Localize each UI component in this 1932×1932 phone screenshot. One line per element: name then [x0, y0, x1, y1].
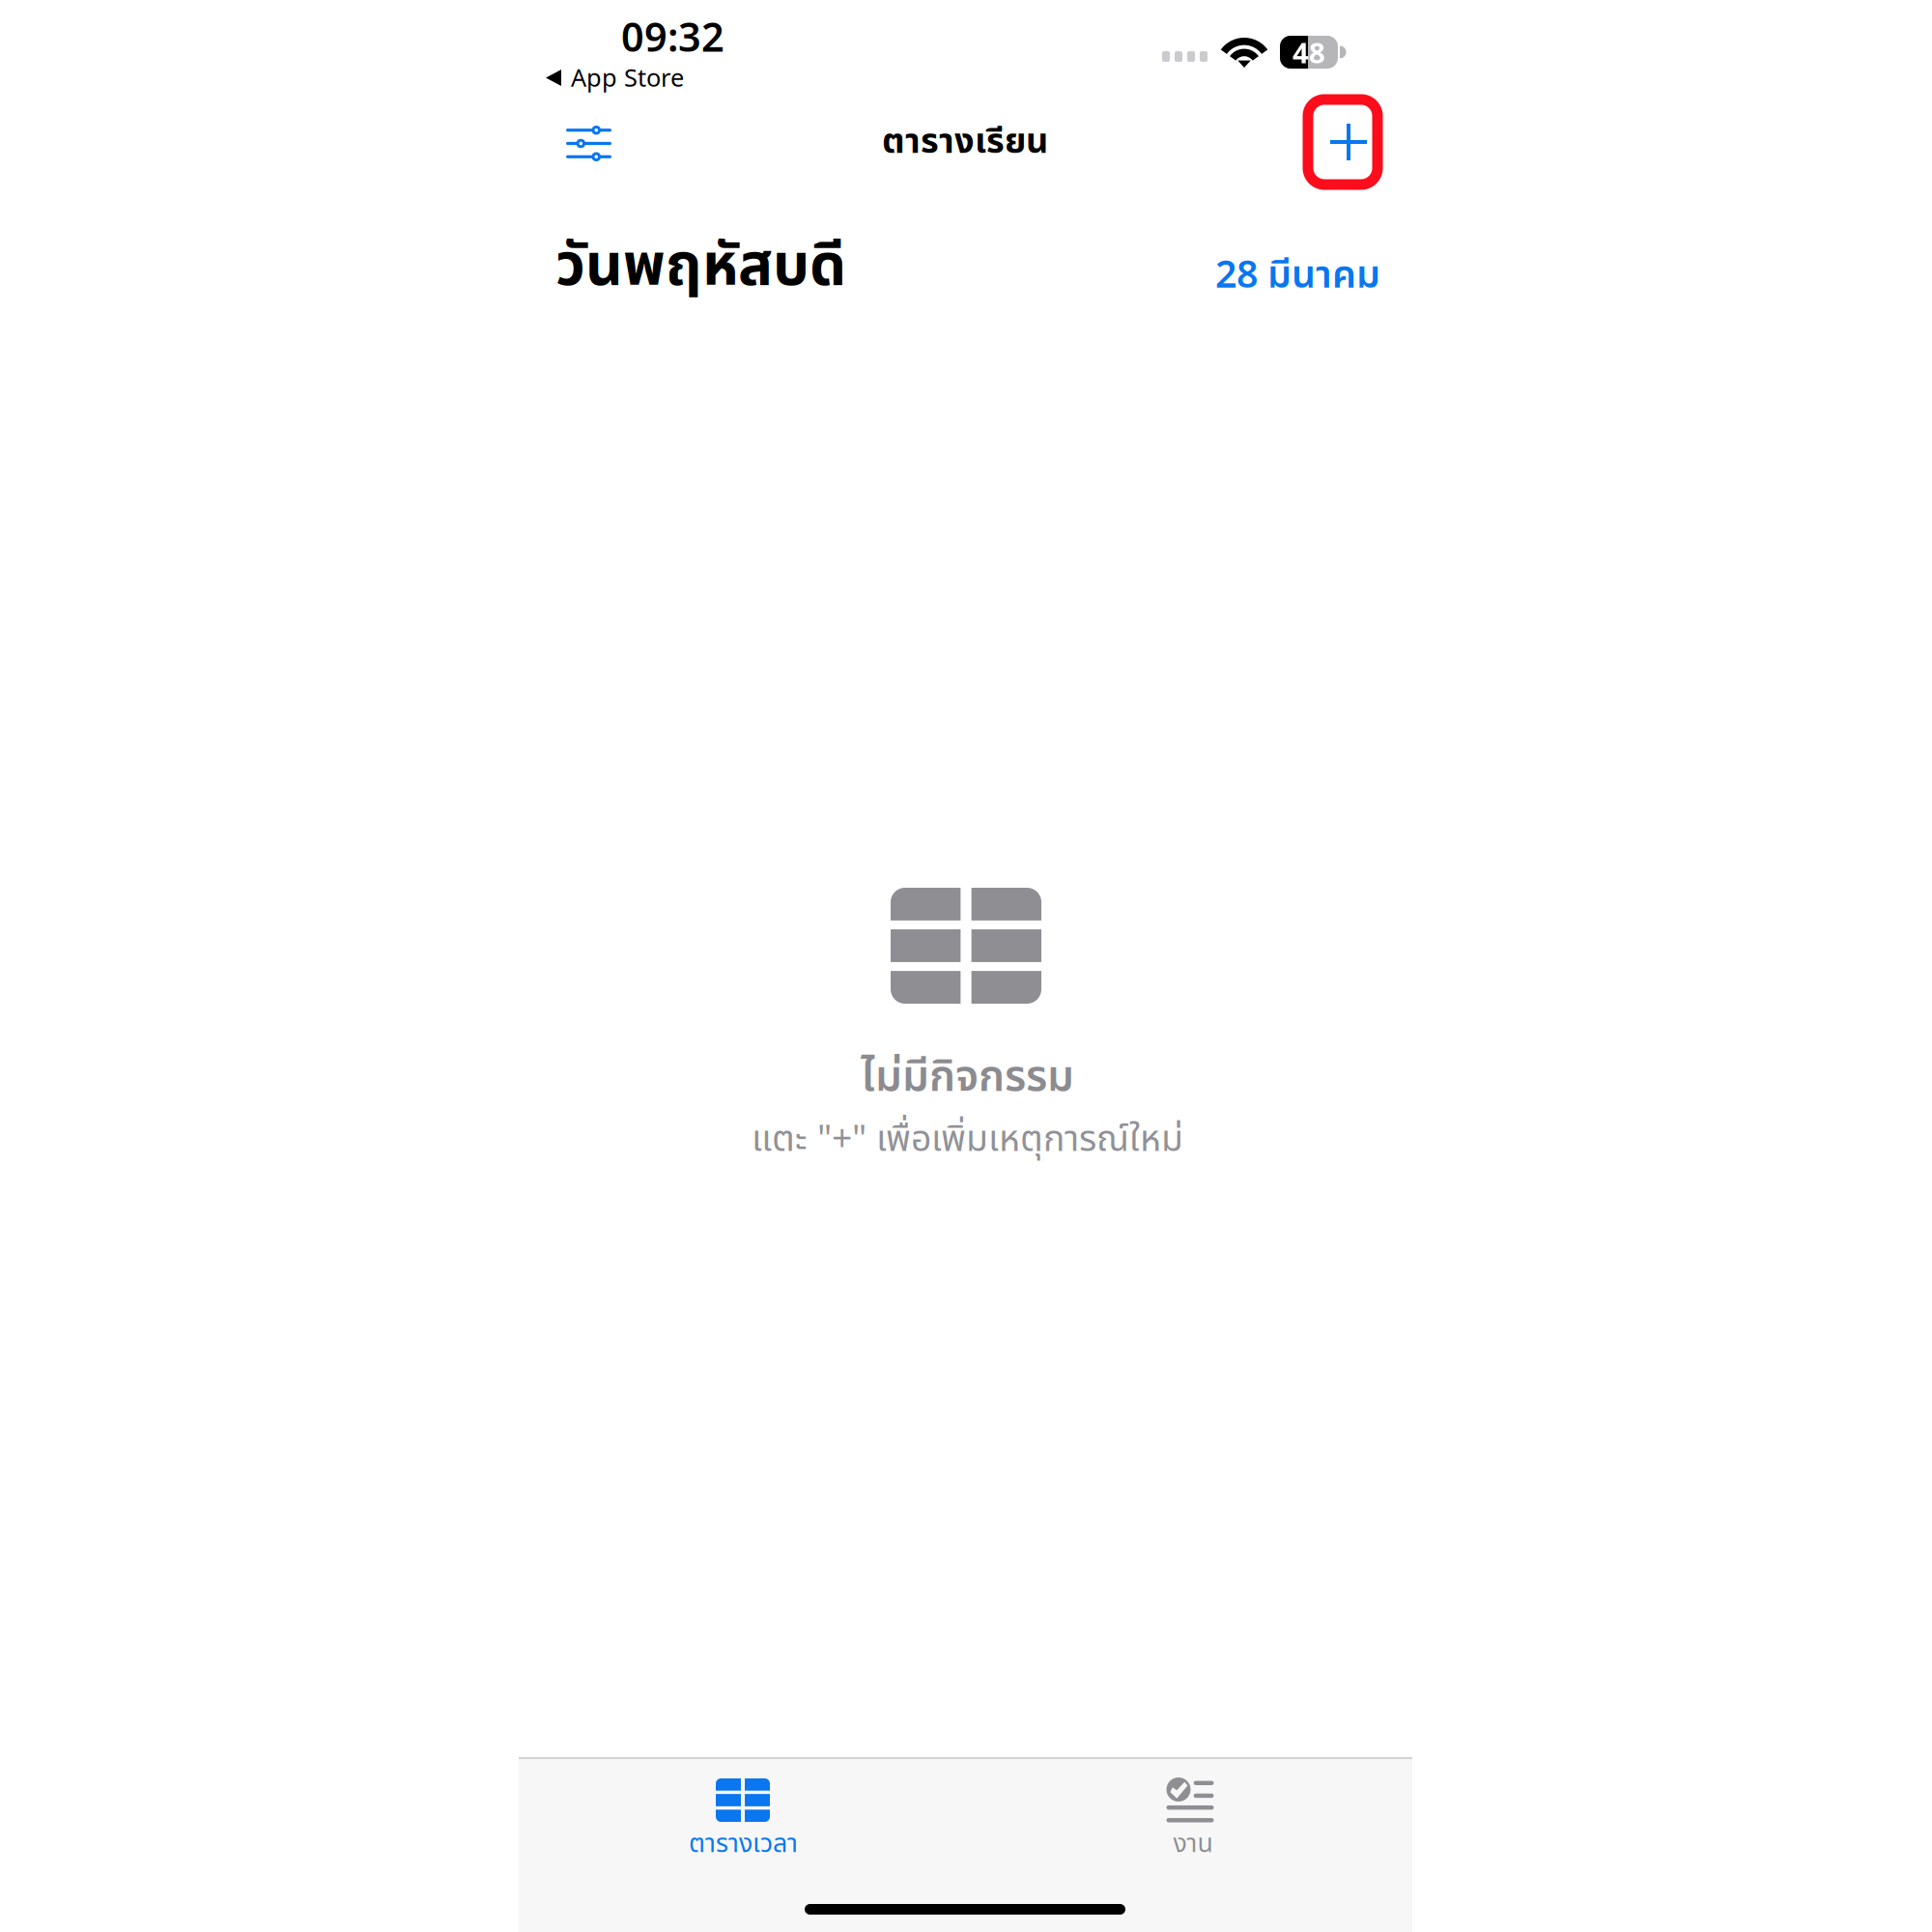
staticText: งาน — [1173, 1825, 1213, 1864]
staticText: ไม่มีกิจกรรม — [861, 1045, 1074, 1109]
staticText: วันพฤหัสบดี — [555, 223, 846, 311]
button[interactable]: Add event — [1308, 99, 1378, 185]
button[interactable]: Filters — [537, 100, 634, 187]
staticText: 48 — [1293, 33, 1325, 71]
staticText: 28 มีนาคม — [1215, 247, 1380, 305]
button[interactable]: ตารางเวลา — [519, 1759, 966, 1870]
button[interactable]: 28 มีนาคม — [1215, 247, 1380, 305]
staticText: ตารางเวลา — [689, 1825, 798, 1864]
staticText: แตะ "+" เพื่อเพิ่มเหตุการณ์ใหม่ — [752, 1113, 1183, 1167]
button[interactable]: งาน — [966, 1759, 1412, 1870]
staticText: ตารางเรียน — [882, 116, 1048, 168]
staticText: 09:32 — [621, 10, 724, 63]
staticText: App Store — [571, 61, 684, 93]
